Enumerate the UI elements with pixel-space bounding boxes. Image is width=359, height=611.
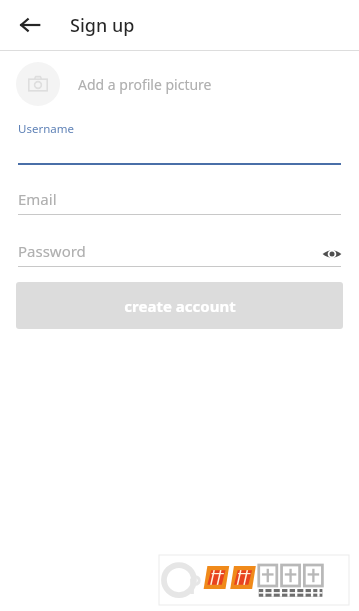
staticText: create account: [124, 296, 236, 316]
staticText: Sign up: [70, 13, 135, 38]
button[interactable]: Password: [0, 227, 359, 279]
button[interactable]: Show password: [315, 237, 349, 271]
button[interactable]: create account: [16, 282, 343, 329]
staticText: Email: [18, 189, 57, 209]
staticText: Password: [18, 241, 86, 261]
button[interactable]: Back: [10, 5, 50, 45]
button[interactable]: Add a profile picture: [0, 51, 359, 117]
button[interactable]: Email: [0, 175, 359, 227]
button[interactable]: Username: [0, 117, 359, 175]
staticText: Username: [18, 121, 74, 137]
staticText: Add a profile picture: [78, 75, 212, 94]
